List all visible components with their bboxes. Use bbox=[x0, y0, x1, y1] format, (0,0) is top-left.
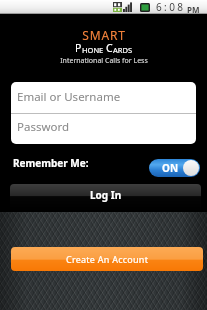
staticText: Create An Account bbox=[66, 253, 149, 265]
button[interactable]: Log In bbox=[10, 184, 201, 212]
button[interactable]: Email or Username bbox=[11, 82, 196, 113]
staticText: 6:08 bbox=[156, 0, 186, 14]
button[interactable]: Password bbox=[11, 114, 196, 144]
staticText: PM bbox=[187, 4, 200, 15]
staticText: Email or Username bbox=[17, 89, 121, 105]
staticText: ON bbox=[162, 161, 179, 175]
staticText: HONE bbox=[82, 45, 106, 55]
staticText: ARDS bbox=[113, 45, 133, 55]
button[interactable]: Remember Me toggle, on bbox=[149, 159, 200, 177]
staticText: Password bbox=[17, 119, 70, 135]
button[interactable]: Create An Account bbox=[11, 247, 203, 271]
staticText: P bbox=[75, 41, 82, 55]
staticText: International Calls for Less bbox=[60, 56, 148, 66]
staticText: Log In bbox=[90, 188, 122, 202]
staticText: SMART bbox=[82, 27, 126, 43]
staticText: C bbox=[106, 41, 113, 55]
staticText: Remember Me: bbox=[13, 156, 89, 170]
